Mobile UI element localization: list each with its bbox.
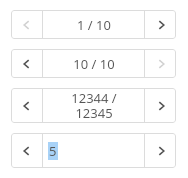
staticText: 1 / 10 bbox=[77, 16, 111, 34]
staticText: 10 / 10 bbox=[73, 55, 115, 73]
button[interactable]: Previous page bbox=[11, 49, 42, 78]
button[interactable]: Previous page bbox=[11, 88, 42, 123]
staticText: 5 bbox=[49, 142, 57, 160]
button[interactable]: Next page bbox=[145, 10, 176, 39]
button[interactable]: Previous page bbox=[11, 133, 42, 168]
button[interactable]: Previous page bbox=[11, 10, 42, 39]
button[interactable]: Next page bbox=[145, 133, 176, 168]
staticText: 12344 / 12345 bbox=[71, 89, 117, 122]
button[interactable]: 5 bbox=[43, 133, 144, 168]
button[interactable]: Next page bbox=[145, 49, 176, 78]
button[interactable]: Next page bbox=[145, 88, 176, 123]
